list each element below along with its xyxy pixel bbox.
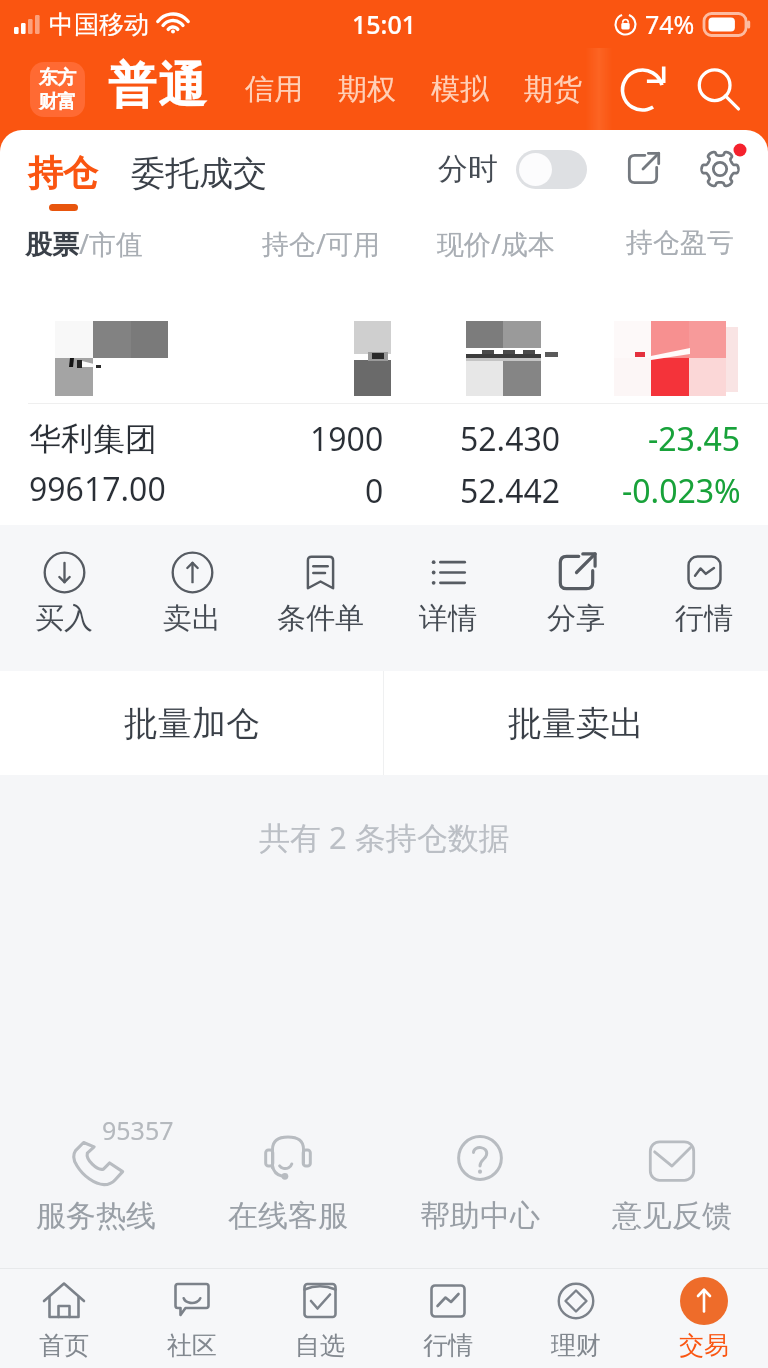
staticText: 卖出 — [163, 600, 221, 637]
staticText: 期权 — [338, 71, 396, 108]
staticText: 服务热线 — [36, 1197, 156, 1235]
staticText: 条件单 — [277, 600, 364, 637]
button[interactable]: 信用 — [245, 71, 303, 108]
button[interactable]: 华利集团 — [0, 404, 768, 525]
staticText: 74% — [645, 7, 695, 41]
staticText: 信用 — [245, 71, 303, 108]
button[interactable]: 东方财富 — [30, 62, 85, 117]
button[interactable]: Share — [618, 144, 668, 194]
staticText: 交易 — [679, 1330, 729, 1361]
staticText: 95357 — [102, 1113, 174, 1147]
button[interactable]: 自选 — [256, 1269, 384, 1368]
staticText: 社区 — [167, 1330, 217, 1361]
button[interactable]: 详情 — [384, 525, 512, 661]
button[interactable]: Settings — [694, 143, 746, 195]
staticText: 买入 — [35, 600, 93, 637]
button[interactable]: 委托成交 — [131, 160, 267, 203]
staticText: 帮助中心 — [420, 1197, 540, 1235]
button[interactable]: 帮助中心 — [384, 1094, 576, 1268]
staticText: 首页 — [39, 1330, 89, 1361]
staticText: 现价/成本 — [437, 225, 556, 262]
staticText: 52.442 — [460, 469, 561, 513]
button[interactable]: 条件单 — [256, 525, 384, 661]
staticText: 持仓 — [28, 151, 98, 195]
button[interactable]: 普通 — [107, 59, 207, 119]
staticText: 1900 — [310, 417, 384, 461]
button[interactable]: 95357 — [0, 1094, 192, 1268]
staticText: 普通 — [107, 56, 207, 116]
button[interactable]: 持仓 — [28, 151, 98, 211]
button[interactable]: 理财 — [512, 1269, 640, 1368]
staticText: 委托成交 — [131, 152, 267, 195]
staticText: 持仓盈亏 — [626, 226, 734, 260]
staticText: /市值 — [79, 225, 144, 262]
staticText: 中国移动 — [49, 9, 149, 40]
staticText: 批量卖出 — [508, 702, 644, 745]
staticText: 理财 — [551, 1330, 601, 1361]
staticText: 自选 — [295, 1330, 345, 1361]
staticText: 财富 — [39, 90, 76, 114]
staticText: -23.45 — [648, 417, 741, 461]
button[interactable]: 行情 — [640, 525, 768, 661]
staticText: 分享 — [547, 600, 605, 637]
button[interactable]: Search — [692, 63, 744, 115]
staticText: 共有 2 条持仓数据 — [259, 816, 510, 858]
button[interactable]: 批量卖出 — [384, 671, 768, 775]
staticText: -0.023% — [622, 469, 741, 513]
staticText: 分时 — [438, 150, 498, 188]
staticText: 持仓/可用 — [262, 225, 381, 262]
button[interactable]: 在线客服 — [192, 1094, 384, 1268]
staticText: 15:01 — [352, 7, 417, 41]
button[interactable]: Refresh — [616, 61, 672, 117]
staticText: 详情 — [419, 600, 477, 637]
button[interactable]: 批量加仓 — [0, 671, 383, 775]
staticText: 99617.00 — [29, 467, 166, 511]
staticText: 股票 — [25, 228, 79, 262]
staticText: 0 — [365, 469, 384, 513]
button[interactable]: 社区 — [128, 1269, 256, 1368]
staticText: 华利集团 — [29, 419, 157, 459]
staticText: 期货 — [524, 71, 582, 108]
button[interactable]: 买入 — [0, 525, 128, 661]
button[interactable]: 期权 — [338, 71, 396, 108]
button[interactable]: 分享 — [512, 525, 640, 661]
button[interactable]: 卖出 — [128, 525, 256, 661]
button[interactable]: 期货 — [524, 71, 582, 108]
button[interactable]: 意见反馈 — [576, 1094, 768, 1268]
button[interactable]: 模拟 — [431, 71, 489, 108]
staticText: 行情 — [675, 600, 733, 637]
staticText: 52.430 — [460, 417, 561, 461]
button[interactable]: 行情 — [384, 1269, 512, 1368]
staticText: 模拟 — [431, 71, 489, 108]
staticText: 批量加仓 — [124, 702, 260, 745]
staticText: 在线客服 — [228, 1197, 348, 1235]
staticText: 意见反馈 — [612, 1197, 732, 1235]
button[interactable]: Toggle time-share chart — [516, 150, 587, 189]
button[interactable]: 交易 — [640, 1269, 768, 1368]
button[interactable]: 首页 — [0, 1269, 128, 1368]
staticText: 东方 — [39, 66, 76, 90]
staticText: 行情 — [423, 1330, 473, 1361]
